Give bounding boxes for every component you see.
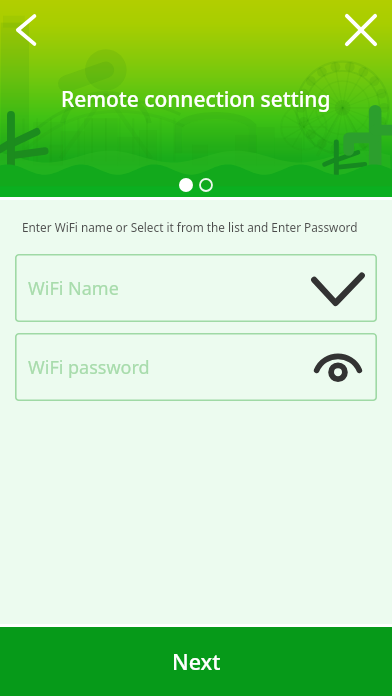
- button[interactable]: Close: [337, 6, 385, 54]
- staticText: WiFi password: [28, 355, 150, 380]
- staticText: Remote connection setting: [61, 85, 331, 113]
- button[interactable]: Show WiFi list: [307, 256, 369, 320]
- staticText: Enter WiFi name or Select it from the li…: [22, 219, 384, 235]
- staticText: Next: [172, 647, 221, 676]
- button[interactable]: Back: [2, 6, 50, 54]
- button[interactable]: Next: [0, 627, 392, 696]
- button[interactable]: Show password: [307, 335, 369, 399]
- staticText: WiFi Name: [28, 276, 119, 301]
- button[interactable]: WiFi password: [15, 333, 377, 401]
- button[interactable]: WiFi Name: [15, 254, 377, 322]
